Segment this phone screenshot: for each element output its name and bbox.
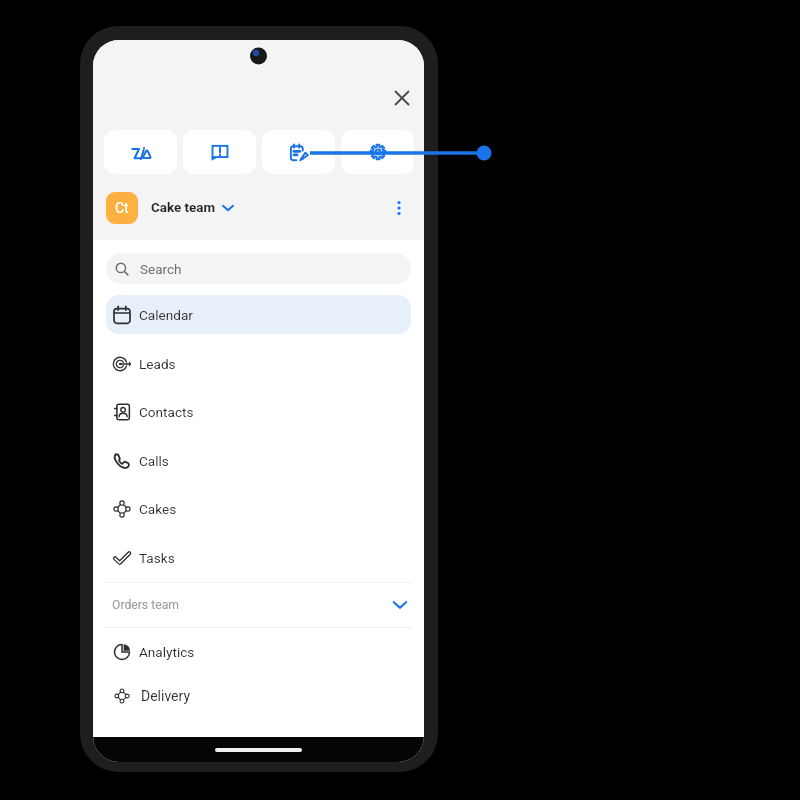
staticText: Analytics xyxy=(139,644,195,660)
button[interactable]: Tasks xyxy=(106,538,411,577)
staticText: Delivery xyxy=(141,688,191,704)
button[interactable]: Analytics xyxy=(106,633,411,670)
button[interactable]: Cake team xyxy=(151,200,235,216)
button[interactable]: Delivery xyxy=(106,677,411,714)
staticText: Leads xyxy=(139,356,176,372)
staticText: Calendar xyxy=(139,307,193,323)
staticText: Orders team xyxy=(112,598,179,612)
button[interactable]: Contacts xyxy=(106,392,411,431)
staticText: Ct xyxy=(115,200,129,216)
button[interactable]: Settings xyxy=(341,130,414,174)
button[interactable]: Calls xyxy=(106,441,411,480)
staticText: Contacts xyxy=(139,404,194,420)
button[interactable]: Calendar xyxy=(106,295,411,334)
button[interactable]: Zia assistant xyxy=(104,130,177,174)
button[interactable]: Orders team xyxy=(112,582,409,628)
button[interactable]: More options xyxy=(387,196,411,220)
button[interactable]: Feeds xyxy=(183,130,256,174)
staticText: Search xyxy=(140,261,182,277)
staticText: Tasks xyxy=(139,550,175,566)
button[interactable]: Cakes xyxy=(106,489,411,528)
staticText: Calls xyxy=(139,453,169,469)
staticText: Cake team xyxy=(151,200,216,216)
button[interactable]: Close xyxy=(387,83,417,113)
button[interactable]: Leads xyxy=(106,344,411,383)
staticText: Cakes xyxy=(139,501,177,517)
button[interactable]: Notes xyxy=(262,130,335,174)
button[interactable]: Search xyxy=(106,253,411,284)
